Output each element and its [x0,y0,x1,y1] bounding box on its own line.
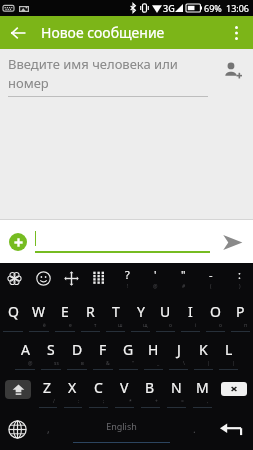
button[interactable]: U [153,294,178,332]
button[interactable]: C [85,370,111,408]
staticText: ш [118,322,123,329]
button[interactable]: Shift [0,370,35,408]
staticText: в [81,360,84,367]
staticText: O [210,302,221,321]
staticText: п [244,322,248,329]
staticText: * [129,398,132,405]
staticText: | [232,360,235,367]
staticText: E [61,302,69,321]
staticText: V [120,378,129,397]
staticText: ( [210,283,212,290]
staticText: N [171,378,182,397]
staticText: Y [137,302,145,321]
button[interactable]: W [26,294,52,332]
button[interactable]: G [116,332,141,370]
staticText: е [69,322,72,329]
button[interactable]: M [189,370,215,408]
button[interactable]: Add contact [217,55,247,85]
staticText: " [132,360,135,367]
button[interactable]: Backspace [215,370,253,408]
staticText: F [99,340,107,359]
staticText: ) [239,283,241,290]
button[interactable]: K [191,332,216,370]
staticText: | [207,360,210,367]
button[interactable]: Move cursor [57,263,85,294]
button[interactable]: Stickers [0,263,29,294]
button[interactable]: D [64,332,90,370]
button[interactable]: Q [0,294,26,332]
button[interactable]: R [78,294,103,332]
staticText: ? [125,267,130,282]
staticText: ' [154,267,157,282]
button[interactable]: F [90,332,116,370]
button[interactable]: : [225,263,253,294]
staticText: C [94,378,103,397]
staticText: _ [157,360,160,367]
button[interactable]: Enter [208,408,253,450]
button[interactable]: " [169,263,197,294]
button[interactable]: Y [128,294,153,332]
staticText: J [177,340,181,359]
staticText: Введите имя человека или [8,55,178,73]
button[interactable]: ? [113,263,141,294]
staticText: : [238,267,241,282]
button[interactable]: V [111,370,137,408]
staticText: X [68,378,77,397]
staticText: т [94,322,97,329]
staticText: , [47,422,50,436]
button[interactable]: Back [4,19,32,47]
button[interactable]: Emoji [29,263,57,294]
button[interactable]: More options [222,19,250,47]
staticText: о [219,322,222,329]
staticText: ё [43,322,46,329]
staticText: S [47,340,55,359]
staticText: M [196,378,209,397]
staticText: і [195,322,197,329]
button[interactable]: English [62,408,180,450]
button[interactable]: - [197,263,225,294]
staticText: / [53,398,55,405]
button[interactable]: S [38,332,64,370]
button[interactable]: E [52,294,78,332]
button[interactable]: B [137,370,163,408]
button[interactable]: X [60,370,85,408]
staticText: \ [183,360,185,367]
button[interactable]: H [141,332,166,370]
button[interactable]: P [228,294,253,332]
staticText: - [209,267,213,282]
button[interactable]: Z [35,370,60,408]
staticText: & [106,360,110,367]
staticText: Z [43,378,52,397]
staticText: W [32,302,46,321]
button[interactable]: Add attachment [5,229,31,255]
button[interactable] [35,231,210,253]
button[interactable]: I [178,294,203,332]
staticText: 69% [204,2,222,14]
staticText: B [145,378,155,397]
button[interactable]: Change language [0,408,34,450]
button[interactable]: A [12,332,38,370]
button[interactable]: O [203,294,228,332]
button[interactable]: ' [141,263,169,294]
button[interactable]: T [103,294,128,332]
staticText: L [225,340,233,359]
staticText: Q [8,302,19,321]
staticText: Новое сообщение [41,23,165,42]
staticText: ! [127,283,129,290]
staticText: T [112,302,120,321]
staticText: номер [8,74,49,92]
staticText: = [181,398,184,405]
staticText: ss [54,360,59,367]
button[interactable]: L [216,332,241,370]
staticText: 13:06 [226,2,250,14]
staticText: D [72,340,83,359]
button[interactable]: J [166,332,191,370]
button[interactable]: Введите имя человека или [8,55,208,97]
staticText: 3G [163,2,175,14]
staticText: , [207,398,209,405]
button[interactable]: Number pad [85,263,113,294]
button[interactable]: N [163,370,189,408]
button[interactable]: Send [216,226,248,258]
